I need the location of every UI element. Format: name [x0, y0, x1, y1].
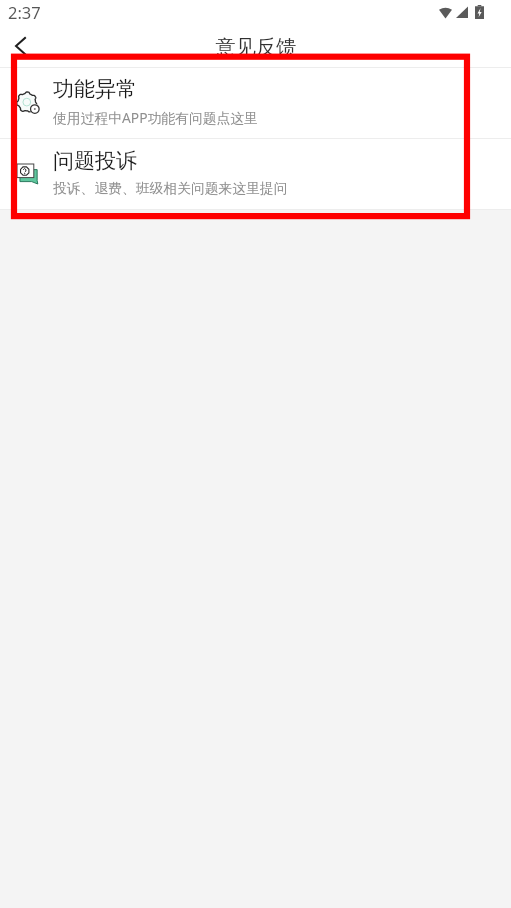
staticText: 问题投诉	[53, 148, 137, 174]
staticText: 意见反馈	[215, 34, 297, 60]
button[interactable]: 功能异常	[0, 68, 511, 138]
staticText: 功能异常	[53, 76, 137, 102]
button[interactable]: Back	[0, 26, 40, 66]
staticText: 使用过程中APP功能有问题点这里	[53, 108, 258, 127]
button[interactable]: 问题投诉	[0, 139, 511, 209]
staticText: 2:37	[8, 1, 41, 23]
staticText: 投诉、退费、班级相关问题来这里提问	[53, 180, 288, 197]
